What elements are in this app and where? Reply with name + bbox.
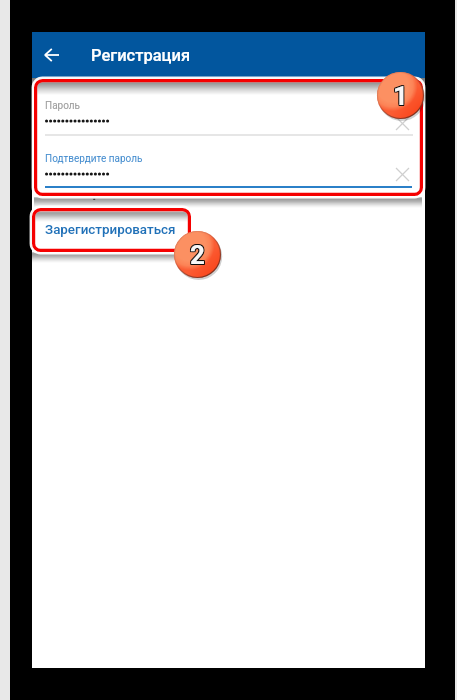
- staticText: Пароль: [45, 100, 81, 112]
- staticText: 2: [189, 241, 204, 271]
- button[interactable]: Back: [31, 35, 71, 75]
- staticText: 1: [393, 80, 408, 110]
- staticText: 1: [392, 80, 407, 110]
- staticText: Регистрация: [91, 46, 191, 65]
- staticText: 2: [190, 241, 205, 271]
- staticText: Зарегистрироваться: [45, 222, 176, 238]
- staticText: 2: [190, 239, 205, 269]
- staticText: Подтвердите пароль: [45, 153, 143, 165]
- button[interactable]: Clear text: [390, 162, 414, 186]
- staticText: 2: [191, 239, 206, 269]
- staticText: 1: [394, 80, 409, 110]
- staticText: 1: [392, 81, 407, 111]
- staticText: 1: [392, 82, 407, 112]
- staticText: 1: [393, 81, 408, 111]
- button[interactable]: Clear text: [390, 111, 414, 135]
- button[interactable]: Зарегистрироваться: [37, 212, 184, 248]
- staticText: 2: [189, 240, 204, 270]
- staticText: 2: [189, 239, 204, 269]
- staticText: 2: [191, 241, 206, 271]
- staticText: 1: [394, 82, 409, 112]
- staticText: 2: [191, 240, 206, 270]
- staticText: 1: [393, 82, 408, 112]
- staticText: 2: [190, 240, 205, 270]
- staticText: 1: [394, 81, 409, 111]
